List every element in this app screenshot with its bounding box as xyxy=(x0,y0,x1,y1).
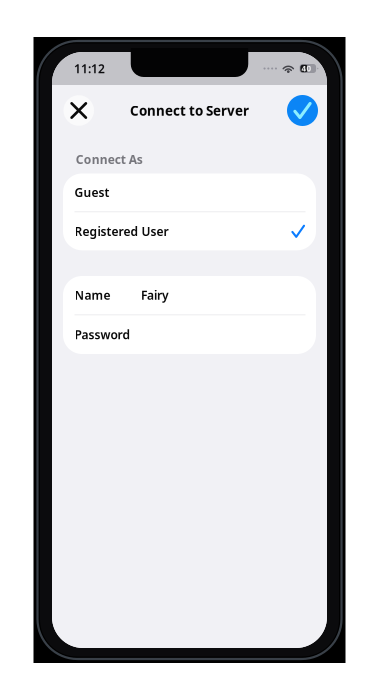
staticText: Registered User xyxy=(74,223,168,239)
staticText: 11:12 xyxy=(74,60,105,76)
button[interactable]: Password xyxy=(63,315,316,354)
staticText: 40 xyxy=(301,63,311,74)
button[interactable]: Guest xyxy=(63,173,316,211)
staticText: Fairy xyxy=(141,287,169,303)
staticText: Guest xyxy=(74,184,109,200)
staticText: Connect As xyxy=(76,151,143,167)
staticText: Password xyxy=(74,327,130,343)
button[interactable]: Done xyxy=(287,95,318,126)
staticText: Name xyxy=(74,287,110,303)
button[interactable]: Registered User xyxy=(63,212,316,250)
button[interactable]: Close xyxy=(63,95,94,126)
button[interactable]: Name xyxy=(63,276,316,314)
staticText: Connect to Server xyxy=(130,102,249,119)
